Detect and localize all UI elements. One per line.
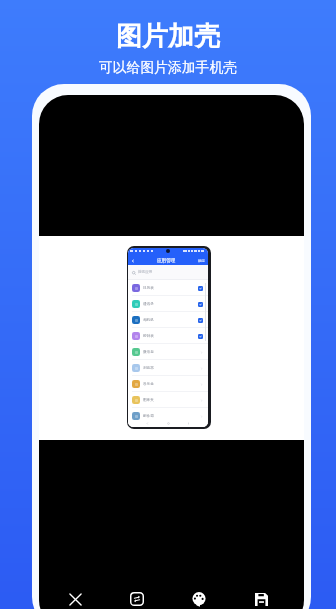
staticText: 时钟表 [143, 334, 154, 339]
staticText: 音乐盒 [143, 382, 154, 387]
button[interactable]: Palette [182, 582, 216, 609]
button[interactable]: Change frame [120, 582, 154, 609]
staticText: 确定 [198, 259, 205, 263]
staticText: 图库夹 [143, 398, 154, 403]
staticText: 搜索应用 [138, 270, 153, 275]
staticText: 浏览器 [143, 366, 154, 371]
staticText: 微信息 [143, 350, 154, 355]
button[interactable]: Close [58, 582, 92, 609]
staticText: 通讯录 [143, 302, 154, 307]
staticText: 邮件箱 [143, 414, 154, 419]
staticText: 相机机 [143, 318, 154, 323]
button[interactable]: Save [244, 582, 278, 609]
staticText: 可以给图片添加手机壳 [99, 59, 237, 76]
staticText: 应用管理 [157, 258, 176, 264]
staticText: 日历表 [143, 286, 154, 291]
staticText: 图片加壳 [116, 20, 220, 53]
